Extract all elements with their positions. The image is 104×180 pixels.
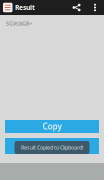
- button[interactable]: Result: [0, 0, 35, 15]
- staticText: Copy: [42, 121, 61, 132]
- button[interactable]: Share: [5, 138, 99, 154]
- button[interactable]: Copy: [5, 120, 99, 133]
- staticText: Result Copied to Clipboard!: [21, 144, 83, 151]
- staticText: SGVsbG8=: [6, 20, 32, 27]
- staticText: Result: [15, 3, 35, 12]
- button[interactable]: Share: [67, 0, 86, 15]
- button[interactable]: More options: [86, 0, 104, 15]
- staticText: Share: [41, 141, 63, 151]
